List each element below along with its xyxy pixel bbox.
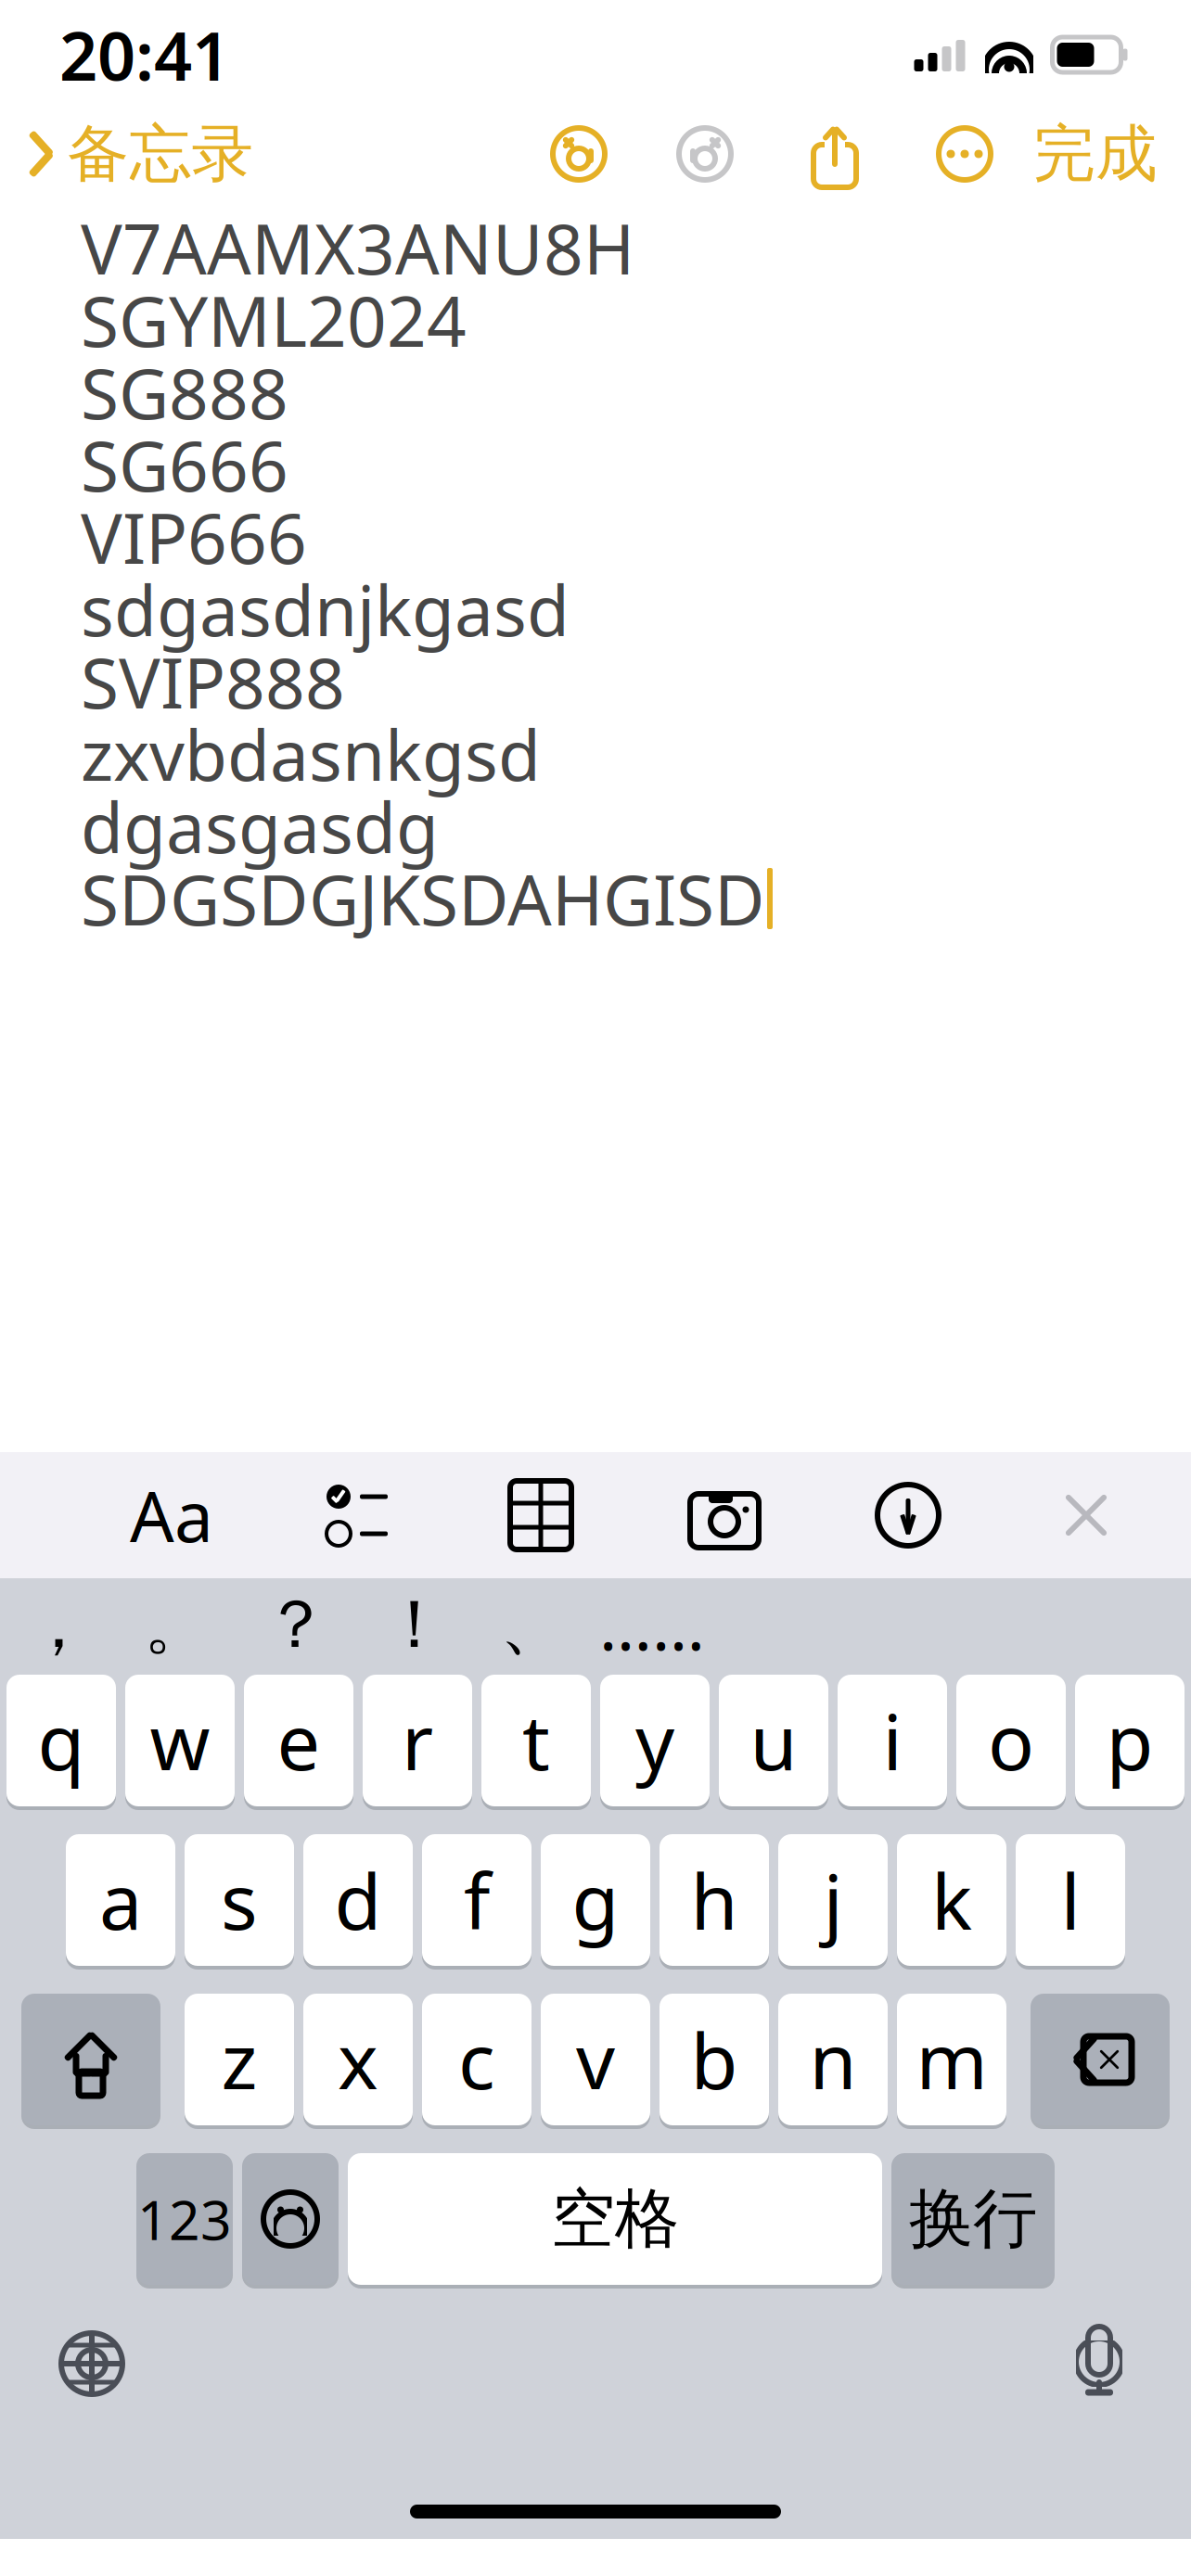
button[interactable]: 备忘录 (0, 109, 269, 198)
staticText: q (38, 1690, 85, 1791)
button[interactable]: ！ (360, 1584, 469, 1665)
staticText: a (99, 1849, 142, 1951)
button[interactable]: z (185, 1990, 294, 2129)
button[interactable]: s (185, 1830, 294, 1970)
button[interactable]: v (541, 1990, 650, 2129)
button[interactable]: i (838, 1671, 947, 1810)
staticText: d (334, 1849, 382, 1951)
staticText: SDGSDGJKSDAHGISD (81, 853, 765, 945)
button[interactable]: d (303, 1830, 413, 1970)
button[interactable]: t (481, 1671, 591, 1810)
staticText: 备忘录 (67, 116, 254, 192)
button[interactable]: Delete (1031, 1990, 1170, 2129)
staticText: z (221, 2009, 257, 2110)
staticText: j (823, 1849, 843, 1951)
button[interactable]: q (6, 1671, 116, 1810)
staticText: k (931, 1849, 972, 1951)
button[interactable]: Emoji (242, 2149, 339, 2289)
button[interactable]: n (778, 1990, 888, 2129)
button[interactable]: Shift (21, 1990, 160, 2129)
button[interactable]: r (363, 1671, 472, 1810)
button[interactable]: Next keyboard (32, 2303, 152, 2424)
staticText: 20:41 (59, 10, 230, 99)
button[interactable]: l (1016, 1830, 1125, 1970)
button[interactable]: Table (480, 1452, 601, 1578)
staticText: i (883, 1690, 902, 1791)
button[interactable]: p (1075, 1671, 1185, 1810)
staticText: h (691, 1849, 738, 1951)
button[interactable]: Undo (534, 109, 623, 198)
staticText: y (635, 1690, 674, 1791)
button[interactable]: f (422, 1830, 531, 1970)
button[interactable]: g (541, 1830, 650, 1970)
button[interactable]: e (244, 1671, 353, 1810)
staticText: u (750, 1690, 797, 1791)
staticText: t (522, 1690, 550, 1791)
staticText: SGYML2024 (81, 274, 467, 366)
button[interactable]: m (897, 1990, 1006, 2129)
staticText: SG888 (81, 346, 288, 438)
staticText: 完成 (1033, 116, 1158, 192)
button[interactable]: a (66, 1830, 175, 1970)
staticText: 。 (144, 1584, 211, 1666)
staticText: …… (599, 1580, 705, 1669)
button[interactable]: More (920, 109, 1009, 198)
staticText: ！ (381, 1584, 448, 1666)
staticText: x (338, 2009, 378, 2110)
button[interactable]: w (125, 1671, 235, 1810)
button[interactable]: ， (4, 1584, 113, 1665)
button[interactable]: ？ (241, 1584, 351, 1665)
staticText: n (809, 2009, 857, 2110)
button[interactable]: b (660, 1990, 769, 2129)
staticText: ？ (263, 1584, 329, 1666)
staticText: v (576, 2009, 615, 2110)
button[interactable]: Markup (848, 1452, 968, 1578)
button[interactable]: 。 (122, 1584, 232, 1665)
staticText: m (916, 2009, 987, 2110)
button[interactable]: Redo (660, 109, 749, 198)
staticText: SG666 (81, 419, 288, 511)
button[interactable]: u (719, 1671, 828, 1810)
staticText: l (1061, 1849, 1080, 1951)
button[interactable]: j (778, 1830, 888, 1970)
staticText: 换行 (909, 2179, 1037, 2258)
staticText: 、 (500, 1584, 567, 1666)
staticText: V7AAMX3ANU8H (81, 202, 634, 294)
button[interactable]: x (303, 1990, 413, 2129)
staticText: 空格 (551, 2179, 679, 2258)
staticText: Aa (130, 1469, 213, 1561)
button[interactable]: 完成 (1009, 109, 1191, 198)
staticText: zxvbdasnkgsd (81, 708, 541, 800)
staticText: dgasgasdg (81, 780, 439, 872)
button[interactable]: Checklist (297, 1452, 417, 1578)
staticText: e (277, 1690, 320, 1791)
staticText: 123 (137, 2183, 232, 2255)
button[interactable]: Text formatting (111, 1452, 232, 1578)
staticText: c (458, 2009, 495, 2110)
button[interactable]: h (660, 1830, 769, 1970)
staticText: sdgasdnjkgasd (81, 563, 570, 655)
staticText: ， (25, 1584, 92, 1666)
staticText: b (691, 2009, 738, 2110)
staticText: SVIP888 (81, 636, 345, 728)
staticText: VIP666 (81, 491, 307, 583)
button[interactable]: 空格 (348, 2149, 882, 2289)
staticText: f (464, 1849, 490, 1951)
button[interactable]: c (422, 1990, 531, 2129)
button[interactable]: Share (790, 109, 879, 198)
staticText: r (402, 1690, 433, 1791)
button[interactable]: Dictation (1039, 2303, 1159, 2424)
staticText: w (150, 1690, 210, 1791)
button[interactable]: o (956, 1671, 1066, 1810)
staticText: o (988, 1690, 1034, 1791)
button[interactable]: Close keyboard (1026, 1452, 1146, 1578)
staticText: s (221, 1849, 258, 1951)
button[interactable]: 123 (136, 2149, 233, 2289)
button[interactable]: 换行 (891, 2149, 1055, 2289)
button[interactable]: Camera (664, 1452, 785, 1578)
staticText: p (1106, 1690, 1153, 1791)
button[interactable]: y (600, 1671, 710, 1810)
button[interactable]: k (897, 1830, 1006, 1970)
button[interactable]: …… (597, 1584, 707, 1665)
button[interactable]: 、 (479, 1584, 588, 1665)
